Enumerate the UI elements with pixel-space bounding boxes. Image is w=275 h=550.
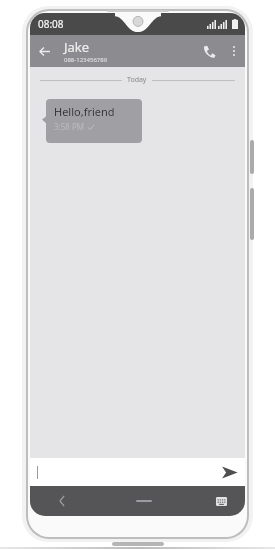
button[interactable] — [30, 458, 213, 486]
button[interactable]: Send — [213, 458, 245, 486]
staticText: Jake — [64, 38, 90, 56]
button[interactable]: Home — [86, 486, 201, 516]
staticText: 3:58 PM — [54, 121, 85, 132]
staticText: Hello,friend — [54, 104, 115, 119]
button[interactable]: More options — [223, 35, 245, 67]
button[interactable]: Call — [195, 35, 223, 67]
button[interactable]: Back — [38, 486, 86, 516]
button[interactable]: Back — [30, 35, 58, 67]
staticText: 088-123456789 — [64, 56, 108, 64]
button[interactable]: Hide keyboard — [201, 486, 241, 516]
staticText: Today — [127, 75, 147, 85]
staticText: 08:08 — [38, 17, 64, 31]
button[interactable]: Jake — [58, 35, 195, 67]
button[interactable]: Hello,friend — [46, 99, 142, 143]
